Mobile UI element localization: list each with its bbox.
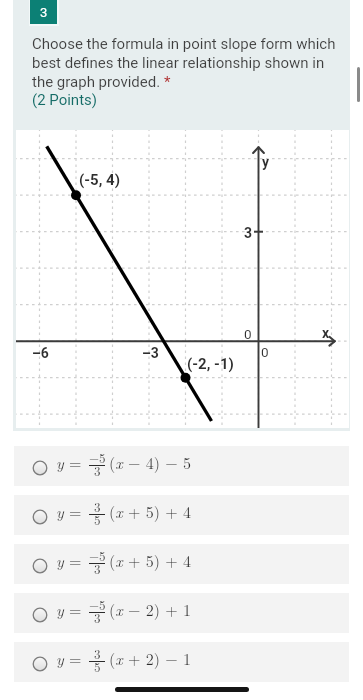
staticText: 0 [244,326,252,342]
staticText: 3 [244,225,253,241]
staticText: 3 [94,559,101,577]
staticText: –6 [32,345,49,361]
staticText: (x + 2) − 1 [109,647,192,670]
staticText: 3 [40,5,48,20]
staticText: y [56,598,64,621]
staticText: Choose the formula in point slope form w… [32,35,344,90]
other: Select answer [32,558,48,574]
button[interactable]: Select answer [14,544,349,584]
staticText: 3 [94,461,101,479]
other: Select answer [32,460,48,476]
staticText: 3 [94,644,101,662]
staticText: = [69,451,82,474]
staticText: −5 [89,546,106,564]
button[interactable]: Select answer [14,593,349,633]
staticText: (2 Points) [32,91,98,109]
staticText: (x − 2) + 1 [109,598,192,621]
staticText: (-5, 4) [79,171,120,189]
staticText: y [56,451,64,474]
staticText: x [322,325,330,341]
staticText: y [56,500,64,523]
staticText: 3 [94,608,101,626]
staticText: −5 [89,448,106,466]
staticText: (x − 4) − 5 [109,451,192,474]
staticText: 5 [94,510,101,528]
staticText: –3 [142,345,159,361]
other: Select answer [32,656,48,672]
staticText: = [69,549,82,572]
button[interactable]: Select answer [14,446,349,486]
staticText: = [69,647,82,670]
button[interactable]: Select answer [14,642,349,682]
button[interactable]: Select answer [14,495,349,535]
staticText: y [262,154,270,170]
other: Select answer [32,509,48,525]
staticText: 3 [94,497,101,515]
staticText: (-2, -1) [187,355,234,373]
staticText: −5 [89,595,106,613]
staticText: (x + 5) + 4 [109,549,192,572]
staticText: y [56,647,64,670]
staticText: = [69,500,82,523]
staticText: (x + 5) + 4 [109,500,192,523]
staticText: 5 [94,657,101,675]
button[interactable]: 3 [30,0,57,24]
other: Select answer [32,607,48,623]
staticText: y [56,549,64,572]
staticText: = [69,598,82,621]
staticText: 0 [261,344,269,360]
